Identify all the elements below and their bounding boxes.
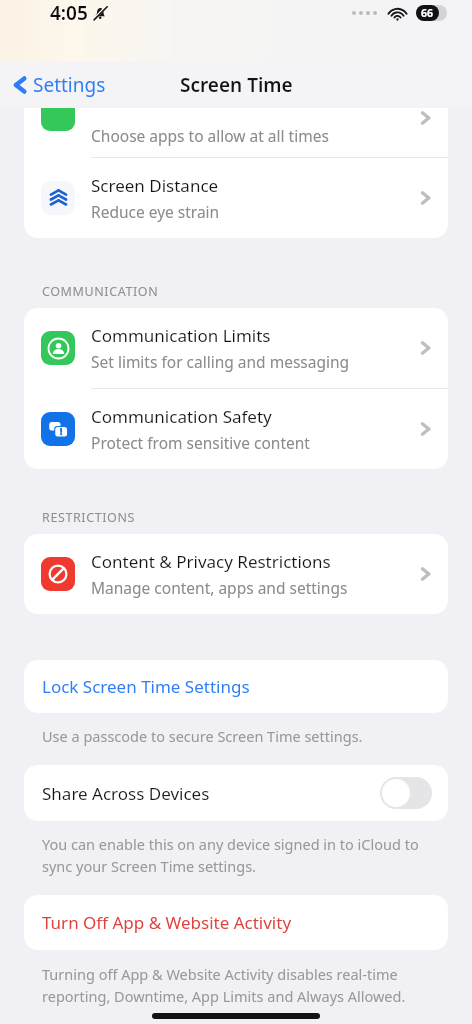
button[interactable]: Content & Privacy Restrictions xyxy=(24,534,448,614)
button[interactable]: Screen Distance xyxy=(24,158,448,238)
staticText: 66 xyxy=(421,6,434,20)
staticText: Set limits for calling and messaging xyxy=(91,351,350,372)
button[interactable]: Settings xyxy=(0,62,130,108)
staticText: Protect from sensitive content xyxy=(91,432,310,453)
staticText: Content & Privacy Restrictions xyxy=(91,550,331,573)
button[interactable]: Communication Limits xyxy=(24,308,448,388)
staticText: 4:05 xyxy=(50,0,88,26)
staticText: RESTRICTIONS xyxy=(42,509,135,526)
staticText: You can enable this on any device signed… xyxy=(42,834,432,876)
button[interactable]: Share Across Devices xyxy=(380,777,432,809)
staticText: Turning off App & Website Activity disab… xyxy=(42,964,432,1006)
staticText: COMMUNICATION xyxy=(42,283,159,300)
staticText: Screen Distance xyxy=(91,174,219,197)
button[interactable]: Share Across Devices xyxy=(24,765,448,821)
staticText: Settings xyxy=(33,72,106,98)
button[interactable]: Turn Off App & Website Activity xyxy=(24,895,448,950)
staticText: Turn Off App & Website Activity xyxy=(42,911,292,934)
staticText: Lock Screen Time Settings xyxy=(42,675,250,698)
button[interactable]: Lock Screen Time Settings xyxy=(24,660,448,713)
staticText: Communication Limits xyxy=(91,324,271,347)
staticText: Manage content, apps and settings xyxy=(91,577,348,598)
staticText: Reduce eye strain xyxy=(91,201,220,222)
staticText: Screen Time xyxy=(180,72,293,98)
staticText: Share Across Devices xyxy=(42,782,380,805)
staticText: Choose apps to allow at all times xyxy=(91,125,420,146)
staticText: Use a passcode to secure Screen Time set… xyxy=(42,726,363,746)
staticText: Communication Safety xyxy=(91,405,272,428)
button[interactable]: Communication Safety xyxy=(24,389,448,469)
button[interactable]: Choose apps to allow at all times xyxy=(24,108,448,157)
